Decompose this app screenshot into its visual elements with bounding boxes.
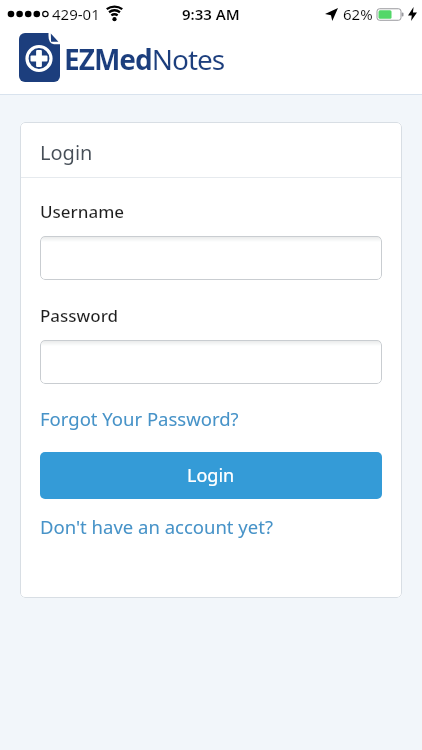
staticText: 9:33 AM (182, 4, 240, 24)
button[interactable]: Forgot Your Password? (40, 406, 239, 431)
staticText: Password (40, 304, 119, 327)
button[interactable] (40, 236, 382, 280)
staticText: EZMedNotes (64, 40, 225, 78)
staticText: 429-01 (52, 4, 100, 24)
staticText: Forgot Your Password? (40, 406, 239, 431)
button[interactable] (40, 340, 382, 384)
button[interactable]: Login (40, 452, 382, 499)
staticText: Login (40, 139, 93, 166)
staticText: 62% (343, 4, 373, 24)
staticText: Username (40, 200, 124, 223)
staticText: Login (187, 463, 235, 488)
staticText: Don't have an account yet? (40, 514, 273, 539)
button[interactable]: Don't have an account yet? (40, 514, 273, 539)
